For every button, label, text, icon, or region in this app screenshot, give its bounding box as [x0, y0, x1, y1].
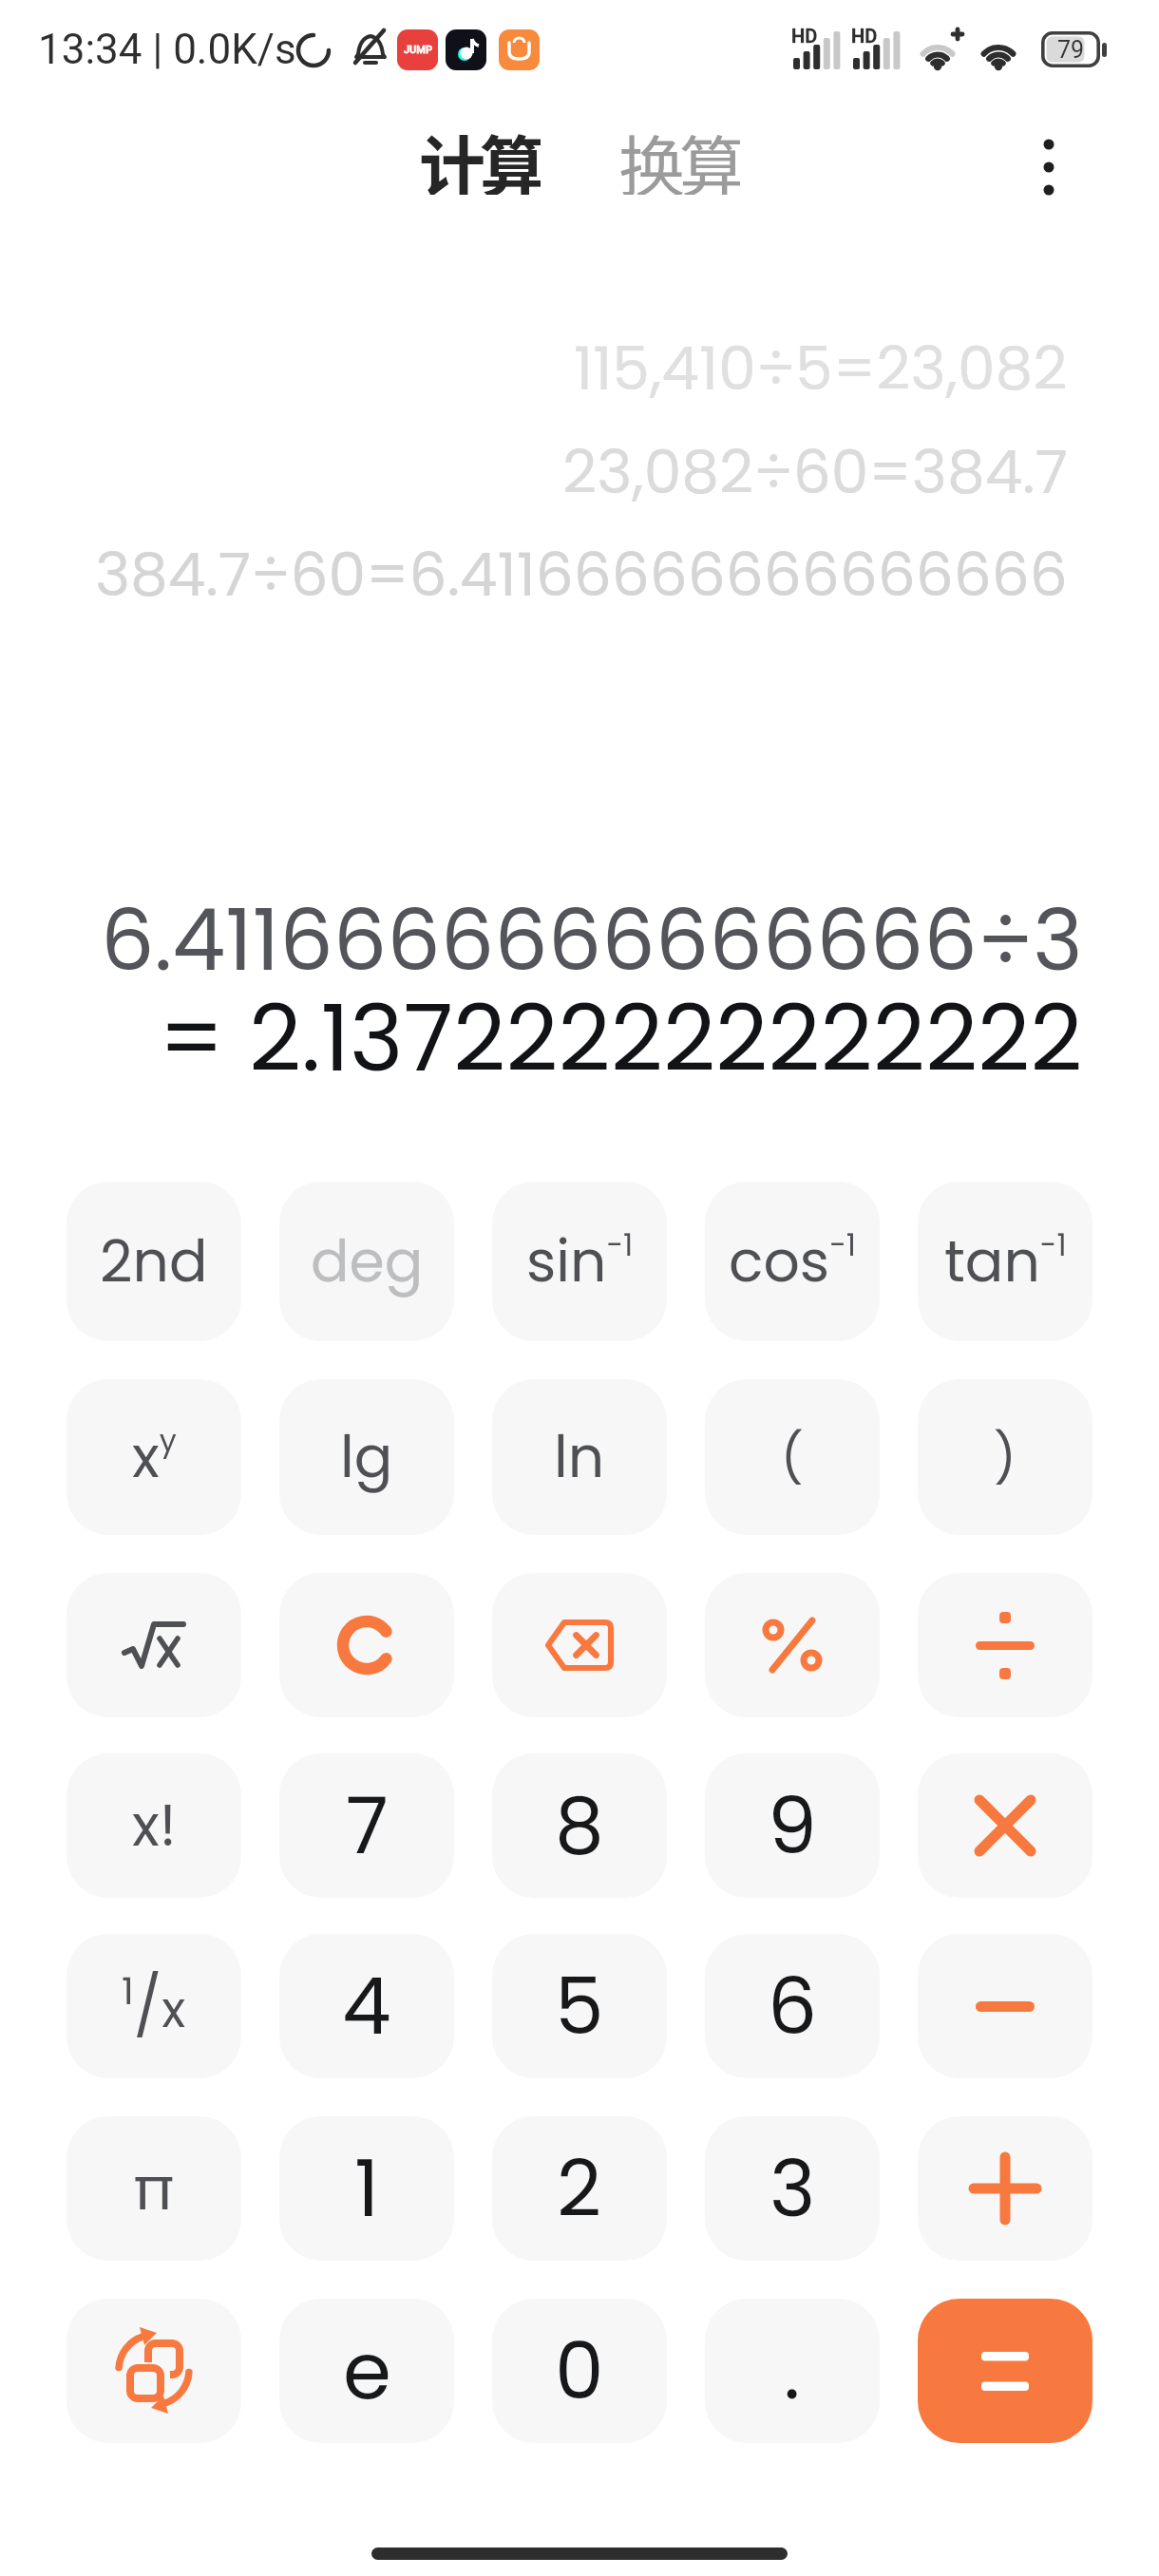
staticText: cos-1	[729, 1222, 857, 1301]
button[interactable]: )	[918, 1379, 1092, 1535]
staticText: )	[994, 1423, 1016, 1492]
button[interactable]	[66, 1573, 241, 1717]
button[interactable]: 8	[492, 1753, 667, 1898]
staticText: 1	[354, 2134, 380, 2244]
button[interactable]: 计算	[419, 115, 541, 195]
button[interactable]	[918, 2299, 1092, 2443]
button[interactable]: cos-1	[705, 1182, 880, 1341]
button[interactable]: sin-1	[492, 1182, 667, 1341]
staticText: 0	[555, 2317, 604, 2426]
staticText: HD	[851, 25, 878, 47]
button[interactable]: π	[66, 2116, 241, 2261]
staticText: ln	[554, 1417, 605, 1497]
button[interactable]	[492, 1573, 667, 1717]
button[interactable]: tan-1	[918, 1182, 1092, 1341]
staticText: 1/x	[122, 1964, 186, 2048]
button[interactable]: (	[705, 1379, 880, 1535]
staticText: 7	[346, 1771, 389, 1881]
button[interactable]: 7	[279, 1753, 454, 1898]
button[interactable]	[918, 1753, 1092, 1898]
button[interactable]	[1035, 133, 1062, 201]
button[interactable]: 9	[705, 1753, 880, 1898]
staticText: deg	[311, 1222, 424, 1301]
staticText: xy	[132, 1417, 177, 1497]
button[interactable]: 1/x	[66, 1934, 241, 2078]
button[interactable]: 3	[705, 2116, 880, 2261]
staticText: sin-1	[526, 1222, 634, 1301]
button[interactable]: deg	[279, 1182, 454, 1341]
button[interactable]	[918, 1573, 1092, 1717]
staticText: lg	[340, 1417, 393, 1497]
staticText: 384.7÷60=6.41166666666666666	[95, 533, 1068, 616]
button[interactable]: 1	[279, 2116, 454, 2261]
button[interactable]: 5	[492, 1934, 667, 2078]
staticText: 计算	[419, 115, 541, 195]
button[interactable]	[279, 1573, 454, 1717]
staticText: 8	[555, 1771, 604, 1881]
staticText: 6	[768, 1952, 818, 2061]
button[interactable]: 6	[705, 1934, 880, 2078]
button[interactable]: 2	[492, 2116, 667, 2261]
staticText: = 2.137222222222222	[159, 975, 1083, 1102]
button[interactable]: .	[705, 2299, 880, 2443]
button[interactable]: 换算	[618, 115, 740, 195]
button[interactable]: e	[279, 2299, 454, 2443]
staticText: 2	[557, 2134, 602, 2244]
staticText: tan-1	[944, 1222, 1067, 1301]
button[interactable]: x!	[66, 1753, 241, 1898]
button[interactable]: ln	[492, 1379, 667, 1535]
staticText: 5	[555, 1952, 604, 2061]
button[interactable]: 4	[279, 1934, 454, 2078]
staticText: 换算	[618, 115, 740, 195]
staticText: 9	[768, 1771, 817, 1881]
button[interactable]	[66, 2299, 241, 2443]
staticText: π	[133, 2148, 176, 2230]
staticText: 2nd	[100, 1222, 208, 1301]
staticText: 4	[342, 1952, 391, 2061]
staticText: 6.4116666666666666÷3	[101, 881, 1083, 1000]
button[interactable]	[918, 2116, 1092, 2261]
staticText: 115,410÷5=23,082	[574, 327, 1068, 410]
button[interactable]	[705, 1573, 880, 1717]
button[interactable]: 2nd	[66, 1182, 241, 1341]
button[interactable]	[918, 1934, 1092, 2078]
staticText: 23,082÷60=384.7	[562, 430, 1068, 514]
staticText: HD	[791, 25, 818, 47]
button[interactable]: lg	[279, 1379, 454, 1535]
staticText: 3	[769, 2134, 816, 2244]
staticText: 13:34 | 0.0K/s	[38, 25, 296, 74]
staticText: (	[781, 1423, 804, 1492]
staticText: x!	[132, 1786, 177, 1866]
staticText: 79	[1057, 36, 1085, 64]
staticText: e	[343, 2317, 391, 2426]
button[interactable]: xy	[66, 1379, 241, 1535]
button[interactable]: 0	[492, 2299, 667, 2443]
staticText: .	[784, 2317, 801, 2426]
staticText: JUMP	[404, 44, 432, 56]
